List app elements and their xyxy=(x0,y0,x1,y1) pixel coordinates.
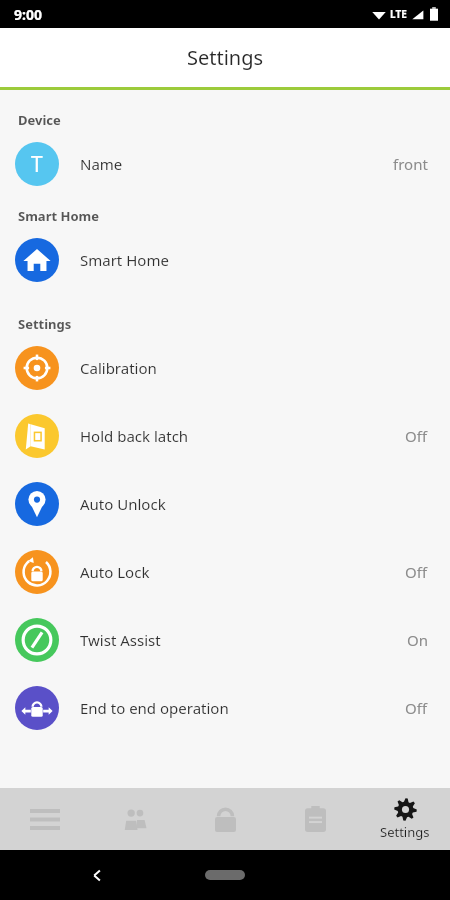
staticText: Calibration xyxy=(80,358,428,378)
staticText: Off xyxy=(405,562,428,582)
staticText: Off xyxy=(405,426,428,446)
staticText: Smart Home xyxy=(18,207,99,225)
staticText: Device xyxy=(18,111,61,129)
button[interactable]: T xyxy=(0,130,450,198)
staticText: T xyxy=(31,150,43,179)
button[interactable]: Calibration xyxy=(0,334,450,402)
staticText: front xyxy=(393,154,428,174)
button[interactable]: End to end operation xyxy=(0,674,450,742)
staticText: LTE xyxy=(390,7,407,21)
button[interactable]: Lock xyxy=(180,788,270,850)
button[interactable]: Auto Unlock xyxy=(0,470,450,538)
staticText: Hold back latch xyxy=(80,426,405,446)
staticText: 9:00 xyxy=(14,5,42,24)
button[interactable]: Settings xyxy=(360,788,450,850)
button[interactable]: Users xyxy=(90,788,180,850)
button[interactable]: Smart Home xyxy=(0,226,450,294)
staticText: Off xyxy=(405,698,428,718)
staticText: On xyxy=(407,630,428,650)
staticText: Twist Assist xyxy=(80,630,407,650)
staticText: Name xyxy=(80,154,393,174)
staticText: Settings xyxy=(187,44,264,71)
button[interactable]: Menu xyxy=(0,788,90,850)
staticText: Auto Unlock xyxy=(80,494,428,514)
button[interactable]: Activity log xyxy=(270,788,360,850)
other: Back xyxy=(90,868,105,883)
staticText: Settings xyxy=(380,823,430,841)
button[interactable]: Twist Assist xyxy=(0,606,450,674)
staticText: Auto Lock xyxy=(80,562,405,582)
staticText: Smart Home xyxy=(80,250,428,270)
staticText: Settings xyxy=(18,315,72,333)
button[interactable]: Hold back latch xyxy=(0,402,450,470)
button[interactable]: Auto Lock xyxy=(0,538,450,606)
staticText: End to end operation xyxy=(80,698,405,718)
